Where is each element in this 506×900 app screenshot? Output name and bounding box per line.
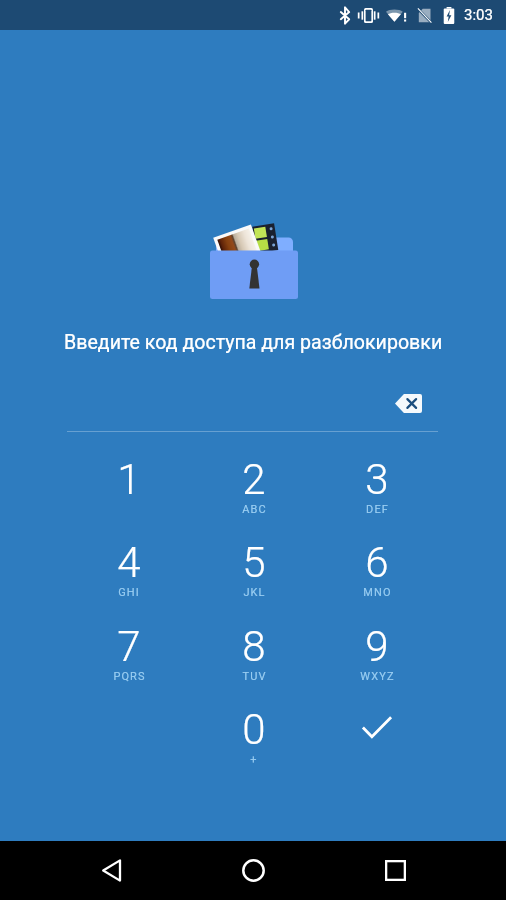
button[interactable]: 1 (83, 441, 175, 519)
staticText: 5 (242, 538, 266, 587)
staticText: JKL (243, 586, 266, 599)
staticText: 0 (242, 705, 266, 754)
staticText: + (250, 753, 258, 766)
staticText: 9 (365, 622, 389, 671)
staticText: 7 (117, 622, 141, 671)
button[interactable]: 2 (208, 441, 300, 519)
button[interactable]: 4 (83, 524, 175, 602)
button[interactable]: Backspace (386, 387, 430, 419)
staticText: 1 (117, 455, 141, 504)
staticText: 3:03 (464, 6, 493, 24)
staticText: MNO (363, 586, 392, 599)
staticText: GHI (118, 586, 140, 599)
staticText: 6 (365, 538, 389, 587)
staticText: PQRS (113, 670, 146, 683)
staticText: 3 (365, 455, 389, 504)
button[interactable]: 7 (83, 608, 175, 686)
button[interactable]: 3 (331, 441, 423, 519)
button[interactable]: Recent apps (365, 841, 425, 900)
button[interactable]: Home (223, 841, 283, 900)
button[interactable]: 5 (208, 524, 300, 602)
staticText: 4 (117, 538, 141, 587)
staticText: TUV (242, 670, 267, 683)
staticText: Введите код доступа для разблокировки (64, 331, 443, 354)
button[interactable]: 0 (208, 691, 300, 769)
staticText: 2 (242, 455, 266, 504)
staticText: WXYZ (360, 670, 395, 683)
staticText: 8 (242, 622, 266, 671)
button[interactable]: 9 (331, 608, 423, 686)
staticText: ABC (242, 503, 267, 516)
button[interactable]: 6 (331, 524, 423, 602)
staticText: DEF (366, 503, 389, 516)
button[interactable]: Confirm passcode (331, 691, 423, 769)
button[interactable]: 8 (208, 608, 300, 686)
button[interactable]: Back (82, 841, 142, 900)
